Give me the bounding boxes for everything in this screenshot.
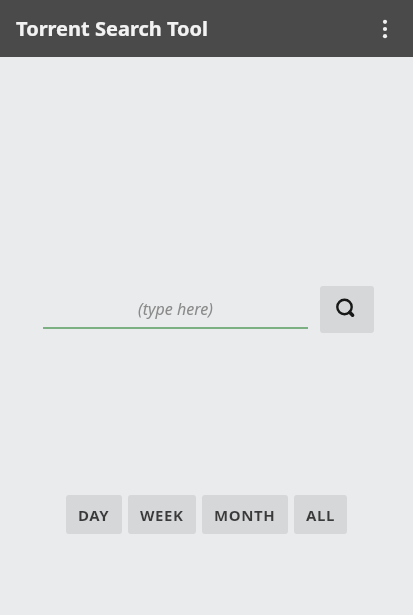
button[interactable]: (type here) [43,290,308,329]
staticText: WEEK [140,505,184,525]
button[interactable]: More options [368,12,402,46]
staticText: (type here) [138,298,213,320]
button[interactable]: MONTH [202,495,288,534]
button[interactable]: WEEK [128,495,196,534]
button[interactable]: DAY [66,495,122,534]
staticText: DAY [78,505,110,525]
staticText: Torrent Search Tool [16,15,209,42]
staticText: ALL [306,505,335,525]
staticText: MONTH [214,505,276,525]
button[interactable]: Search [320,286,374,333]
button[interactable]: ALL [294,495,347,534]
